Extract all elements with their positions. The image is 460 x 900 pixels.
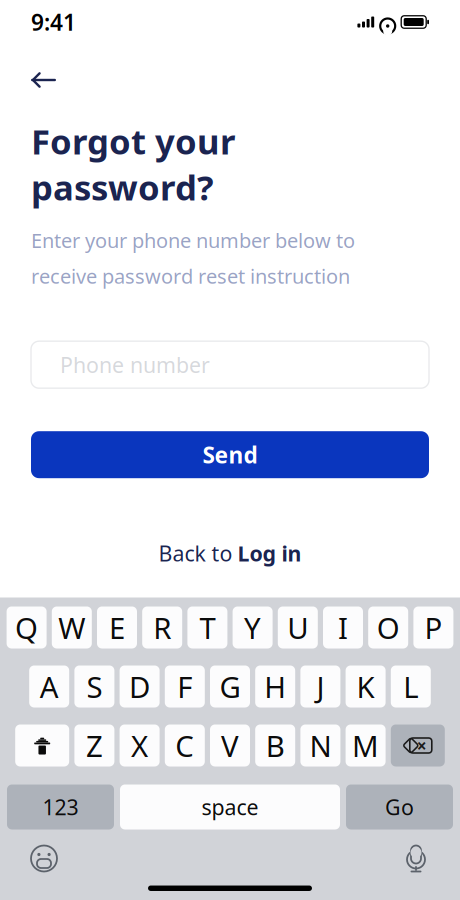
staticText: S: [86, 667, 102, 706]
button[interactable]: space: [120, 784, 340, 829]
staticText: U: [287, 608, 308, 647]
button[interactable]: Back: [31, 60, 75, 100]
staticText: space: [201, 793, 258, 821]
button[interactable]: N: [300, 724, 340, 766]
staticText: Log in: [237, 539, 301, 567]
button[interactable]: L: [391, 665, 431, 707]
button[interactable]: Back to: [148, 533, 311, 573]
button[interactable]: T: [187, 606, 227, 648]
staticText: Back to: [158, 539, 232, 567]
button[interactable]: D: [120, 665, 160, 707]
staticText: N: [309, 726, 331, 765]
staticText: Y: [244, 608, 261, 647]
staticText: L: [403, 667, 418, 706]
button[interactable]: K: [346, 665, 386, 707]
button[interactable]: P: [413, 606, 453, 648]
button[interactable]: W: [52, 606, 92, 648]
button[interactable]: J: [300, 665, 340, 707]
staticText: Z: [86, 726, 103, 765]
staticText: E: [109, 608, 125, 647]
staticText: A: [40, 667, 59, 706]
button[interactable]: Send: [31, 431, 429, 478]
button[interactable]: Dictate: [396, 841, 436, 875]
staticText: 9:41: [31, 7, 76, 37]
staticText: R: [153, 608, 171, 647]
staticText: 123: [42, 793, 78, 821]
staticText: Go: [385, 793, 414, 821]
staticText: ×: [417, 734, 427, 757]
button[interactable]: H: [255, 665, 295, 707]
button[interactable]: V: [210, 724, 250, 766]
staticText: J: [316, 667, 324, 706]
button[interactable]: I: [323, 606, 363, 648]
button[interactable]: M: [346, 724, 386, 766]
button[interactable]: X: [120, 724, 160, 766]
staticText: B: [266, 726, 285, 765]
staticText: Send: [202, 440, 257, 470]
button[interactable]: C: [165, 724, 205, 766]
button[interactable]: F: [165, 665, 205, 707]
button[interactable]: E: [97, 606, 137, 648]
staticText: K: [357, 667, 375, 706]
staticText: Enter your phone number below to receive…: [31, 227, 355, 289]
staticText: I: [338, 608, 348, 647]
staticText: Q: [15, 608, 38, 647]
button[interactable]: U: [278, 606, 318, 648]
button[interactable]: Y: [233, 606, 273, 648]
staticText: W: [58, 608, 85, 647]
button[interactable]: Emoji: [24, 841, 64, 875]
button[interactable]: Delete: [391, 724, 445, 766]
button[interactable]: Shift: [15, 724, 69, 766]
button[interactable]: Z: [74, 724, 114, 766]
staticText: M: [352, 726, 379, 765]
staticText: D: [129, 667, 150, 706]
staticText: O: [377, 608, 400, 647]
staticText: X: [131, 726, 148, 765]
button[interactable]: Go: [346, 784, 453, 829]
staticText: P: [424, 608, 442, 647]
staticText: G: [219, 667, 240, 706]
staticText: H: [264, 667, 286, 706]
button[interactable]: G: [210, 665, 250, 707]
button[interactable]: A: [29, 665, 69, 707]
staticText: V: [221, 726, 239, 765]
staticText: Phone number: [60, 350, 210, 379]
staticText: F: [177, 667, 192, 706]
button[interactable]: B: [255, 724, 295, 766]
staticText: T: [199, 608, 215, 647]
button[interactable]: 123: [7, 784, 114, 829]
staticText: C: [175, 726, 194, 765]
button[interactable]: O: [368, 606, 408, 648]
button[interactable]: Q: [7, 606, 47, 648]
button[interactable]: S: [74, 665, 114, 707]
button[interactable]: R: [142, 606, 182, 648]
staticText: Forgot your password?: [31, 118, 235, 210]
